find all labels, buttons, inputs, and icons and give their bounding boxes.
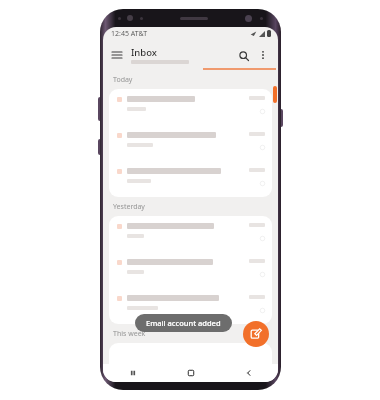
button[interactable]: Back — [220, 364, 278, 382]
button[interactable]: More options — [256, 48, 270, 62]
button[interactable]: Menu — [110, 48, 124, 62]
staticText: This week — [113, 329, 146, 339]
button[interactable] — [109, 89, 272, 125]
button[interactable] — [109, 252, 272, 288]
staticText: Email account added — [146, 318, 221, 328]
button[interactable]: Compose — [243, 321, 269, 347]
button[interactable]: Recents — [103, 364, 162, 382]
button[interactable] — [109, 216, 272, 252]
button[interactable] — [109, 161, 272, 197]
staticText: Yesterday — [113, 202, 145, 212]
button[interactable] — [109, 125, 272, 161]
button[interactable]: Email account added — [135, 314, 232, 332]
button[interactable]: Home — [162, 364, 220, 382]
staticText: 12:45 AT&T — [111, 29, 148, 39]
button[interactable] — [109, 288, 272, 324]
staticText: Inbox — [131, 46, 157, 59]
staticText: Today — [113, 75, 133, 85]
button[interactable]: Search — [236, 48, 251, 63]
